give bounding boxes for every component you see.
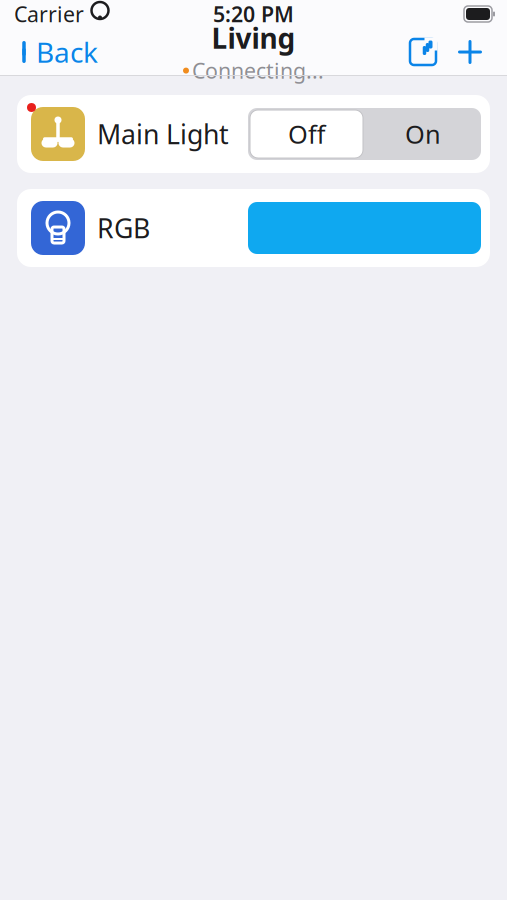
staticText: Carrier [14,0,84,28]
staticText: 5:20 PM [213,0,294,28]
button[interactable]: Back [6,27,110,77]
staticText: On [405,117,441,151]
staticText: RGB [97,210,150,246]
staticText: Off [288,117,325,151]
staticText: Living [211,19,295,56]
button[interactable]: On [365,108,481,160]
button[interactable]: Add [445,33,495,71]
staticText: Back [36,33,98,71]
button[interactable]: RGB [17,189,490,267]
button[interactable]: Main Light [17,95,490,173]
staticText: Main Light [97,116,229,152]
staticText: Connecting... [192,56,324,85]
button[interactable]: Edit [401,32,445,72]
button[interactable]: Off [248,108,365,160]
